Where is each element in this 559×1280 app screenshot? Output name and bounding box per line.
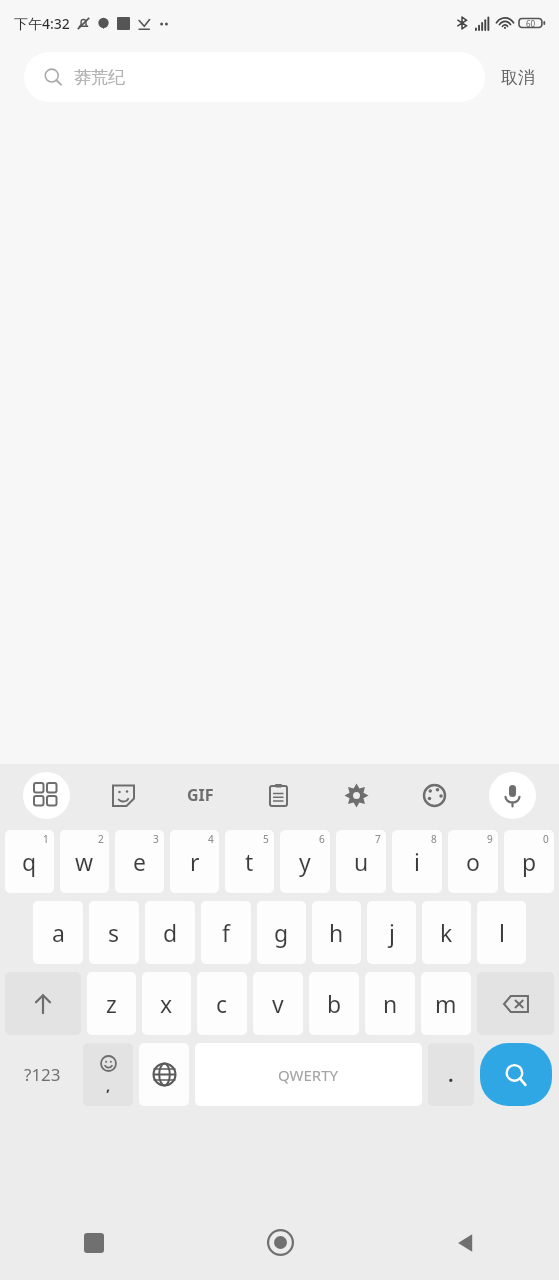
staticText: 2 — [98, 832, 104, 846]
staticText: 0 — [543, 832, 549, 846]
button[interactable]: o — [448, 830, 498, 893]
staticText: 5 — [263, 832, 269, 846]
staticText: f — [222, 917, 230, 948]
staticText: s — [108, 917, 120, 948]
button[interactable]: e — [115, 830, 164, 893]
button[interactable]: l — [477, 901, 526, 964]
button[interactable]: Themes — [395, 764, 473, 826]
staticText: 下午4:32 — [14, 14, 70, 33]
staticText: k — [440, 917, 453, 948]
staticText: d — [163, 917, 178, 948]
staticText: 取消 — [501, 67, 535, 88]
button[interactable]: Voice input — [473, 764, 551, 826]
button[interactable]: GIF — [162, 764, 239, 826]
button[interactable]: w — [60, 830, 109, 893]
staticText: o — [466, 846, 480, 877]
button[interactable]: g — [257, 901, 306, 964]
staticText: b — [327, 988, 342, 1019]
staticText: e — [133, 846, 146, 877]
button[interactable]: f — [201, 901, 251, 964]
button[interactable]: Shift — [5, 972, 81, 1035]
staticText: t — [245, 846, 254, 877]
button[interactable]: Search — [480, 1043, 552, 1106]
button[interactable]: z — [87, 972, 136, 1035]
button[interactable]: j — [367, 901, 416, 964]
staticText: v — [272, 988, 284, 1019]
button[interactable]: Change language — [139, 1043, 189, 1106]
button[interactable]: QWERTY — [195, 1043, 422, 1106]
button[interactable]: Clipboard — [239, 764, 317, 826]
button[interactable]: m — [421, 972, 471, 1035]
staticText: g — [274, 917, 289, 948]
staticText: m — [435, 988, 457, 1019]
button[interactable]: r — [170, 830, 219, 893]
staticText: 3 — [153, 832, 159, 846]
staticText: l — [499, 917, 505, 948]
staticText: u — [354, 846, 369, 877]
button[interactable]: 莽荒纪 — [24, 52, 485, 102]
button[interactable]: b — [309, 972, 359, 1035]
staticText: x — [160, 988, 173, 1019]
button[interactable]: u — [336, 830, 386, 893]
button[interactable]: p — [504, 830, 554, 893]
staticText: z — [106, 988, 117, 1019]
staticText: 4 — [208, 832, 214, 846]
button[interactable]: Apps — [8, 764, 85, 826]
button[interactable]: d — [145, 901, 195, 964]
staticText: 6 — [319, 832, 325, 846]
button[interactable]: Backspace — [477, 972, 554, 1035]
staticText: p — [522, 846, 537, 877]
staticText: ?123 — [24, 1063, 61, 1086]
button[interactable]: Home — [187, 1205, 373, 1280]
staticText: 60 — [526, 18, 536, 29]
button[interactable]: x — [142, 972, 191, 1035]
staticText: j — [389, 917, 395, 948]
staticText: GIF — [187, 784, 214, 806]
button[interactable]: c — [197, 972, 247, 1035]
staticText: h — [329, 917, 344, 948]
staticText: i — [414, 846, 420, 877]
button[interactable]: i — [392, 830, 442, 893]
button[interactable]: q — [5, 830, 54, 893]
staticText: 莽荒纪 — [74, 67, 125, 88]
button[interactable]: t — [225, 830, 274, 893]
button[interactable]: Emoji and comma — [83, 1043, 133, 1106]
button[interactable]: v — [253, 972, 303, 1035]
staticText: y — [299, 846, 311, 877]
button[interactable]: h — [312, 901, 361, 964]
button[interactable]: Recent apps — [0, 1205, 187, 1280]
staticText: q — [22, 846, 37, 877]
button[interactable]: Stickers — [85, 764, 162, 826]
button[interactable]: Back — [373, 1205, 559, 1280]
staticText: a — [52, 917, 65, 948]
staticText: 7 — [375, 832, 381, 846]
staticText: r — [190, 846, 200, 877]
button[interactable]: y — [280, 830, 330, 893]
button[interactable]: n — [365, 972, 415, 1035]
staticText: n — [383, 988, 398, 1019]
staticText: c — [216, 988, 228, 1019]
button[interactable]: 取消 — [491, 59, 545, 96]
staticText: QWERTY — [278, 1065, 339, 1085]
button[interactable]: s — [89, 901, 139, 964]
staticText: . — [448, 1061, 454, 1088]
staticText: 8 — [431, 832, 437, 846]
button[interactable]: Period — [428, 1043, 474, 1106]
button[interactable]: ?123 — [7, 1043, 77, 1106]
staticText: 1 — [43, 832, 49, 846]
staticText: w — [75, 846, 94, 877]
staticText: , — [106, 1075, 111, 1095]
button[interactable]: k — [422, 901, 471, 964]
button[interactable]: a — [33, 901, 83, 964]
staticText: 9 — [487, 832, 493, 846]
button[interactable]: Settings — [317, 764, 395, 826]
